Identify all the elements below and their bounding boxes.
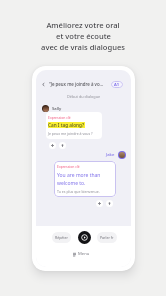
staticText: “Je peux me joindre à vo…	[49, 81, 104, 87]
button[interactable]: Expression clé	[54, 161, 116, 197]
button[interactable]: Listen	[106, 200, 113, 207]
staticText: You are more than welcome to.	[57, 172, 101, 186]
staticText: Répéter	[55, 235, 68, 240]
staticText: Début du dialogue	[67, 94, 101, 99]
staticText: Sally	[52, 106, 62, 112]
staticText: Can I tag along?	[48, 122, 85, 128]
staticText: A1	[114, 82, 120, 87]
button[interactable]: Parler fr	[97, 232, 117, 243]
button[interactable]: Add	[49, 142, 56, 149]
staticText: Parler fr	[100, 235, 114, 240]
button[interactable]: Back	[41, 70, 123, 98]
staticText: et votre écoute	[56, 31, 111, 41]
button[interactable]: Menu	[73, 251, 90, 257]
staticText: Menu	[78, 251, 90, 257]
staticText: Tu es plus que bienvenue.	[57, 189, 100, 194]
staticText: Jake	[106, 152, 115, 158]
staticText: Expression clé	[48, 115, 71, 120]
staticText: Expression clé	[57, 164, 80, 169]
other: Back	[41, 82, 46, 87]
button[interactable]: Expression clé	[46, 112, 102, 139]
button[interactable]: Répéter	[52, 232, 71, 243]
staticText: avec de vrais dialogues	[41, 42, 125, 52]
staticText: Améliorez votre oral	[46, 20, 120, 30]
button[interactable]: Add	[96, 200, 103, 207]
staticText: Je peux me joindre à vous ?	[48, 131, 93, 136]
button[interactable]: Listen	[59, 142, 66, 149]
button[interactable]: Play	[78, 231, 91, 244]
